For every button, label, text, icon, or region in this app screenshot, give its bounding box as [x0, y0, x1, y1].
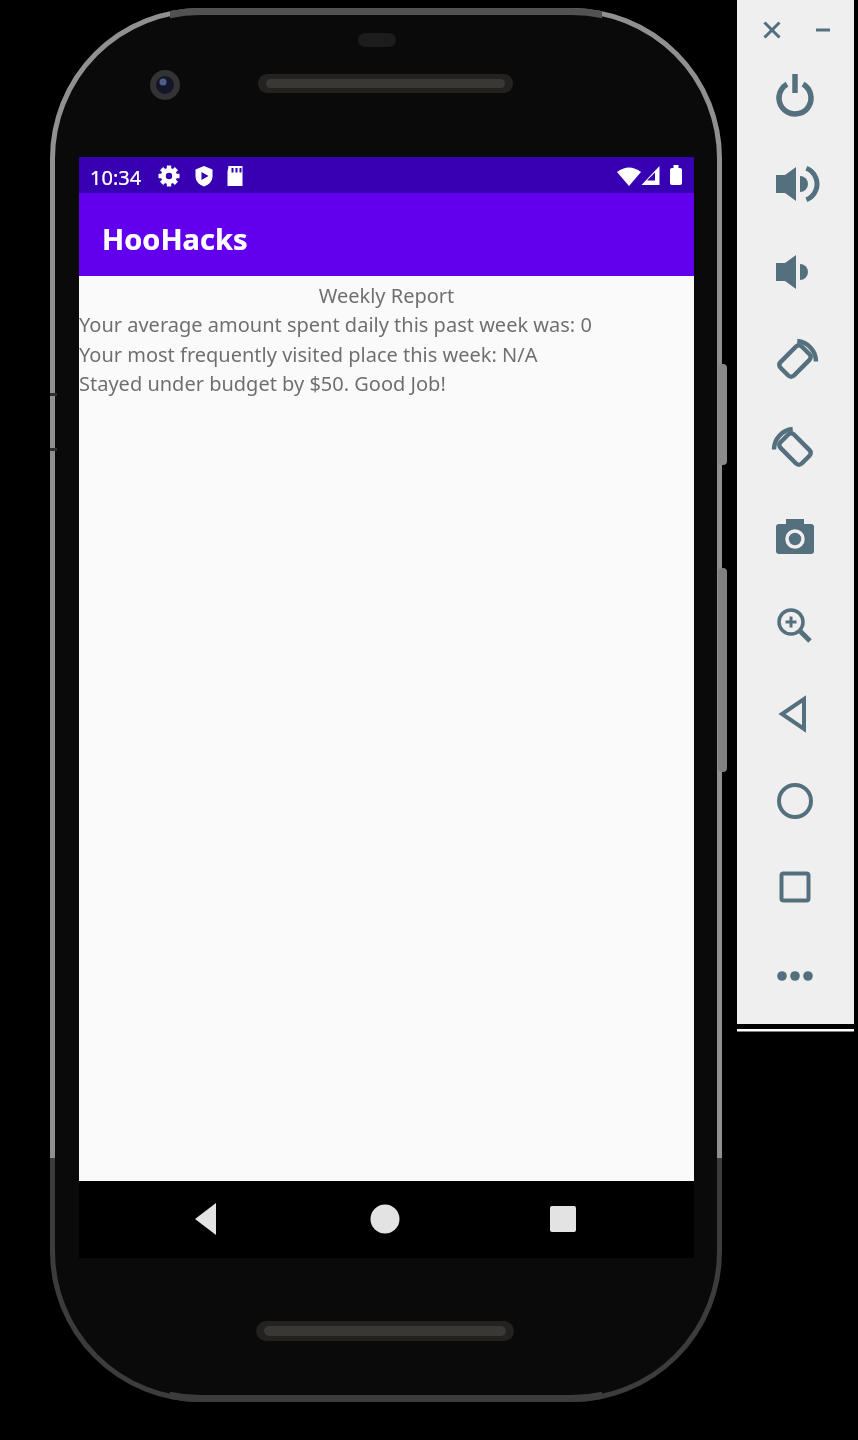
button[interactable]: [538, 1194, 588, 1244]
button[interactable]: [771, 952, 819, 1000]
staticText: HooHacks: [102, 219, 248, 258]
button[interactable]: [771, 690, 819, 738]
staticText: Your average amount spent daily this pas…: [79, 311, 694, 397]
button[interactable]: [360, 1194, 410, 1244]
button[interactable]: [799, 6, 847, 54]
staticText: Weekly Report: [79, 282, 694, 309]
button[interactable]: [182, 1194, 232, 1244]
button[interactable]: [771, 248, 819, 296]
staticText: 10:34: [90, 164, 142, 191]
button[interactable]: [771, 160, 819, 208]
button[interactable]: [771, 602, 819, 650]
button[interactable]: [771, 777, 819, 825]
button[interactable]: [771, 513, 819, 561]
button[interactable]: [771, 337, 819, 385]
button[interactable]: [771, 71, 819, 119]
button[interactable]: [748, 6, 796, 54]
button[interactable]: [771, 863, 819, 911]
button[interactable]: [771, 425, 819, 473]
